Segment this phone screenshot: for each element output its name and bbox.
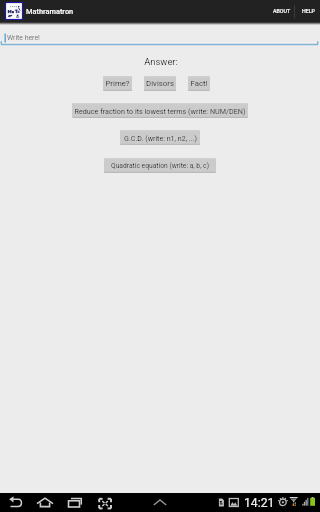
staticText: Mathramatron [26, 7, 74, 16]
button[interactable]: HELP [297, 3, 319, 19]
button[interactable]: Write here! [0, 30, 320, 46]
staticText: Write here! [7, 34, 40, 42]
staticText: Prime? [105, 79, 130, 88]
button[interactable]: ABOUT [268, 3, 296, 19]
button[interactable]: Divisors [144, 76, 176, 91]
button[interactable]: Reduce fraction to its lowest terms (wri… [72, 103, 248, 118]
button[interactable]: Fact! [188, 76, 210, 91]
button[interactable]: Back [6, 495, 26, 511]
button[interactable]: App icon [5, 2, 23, 20]
button[interactable]: Quadratic equation (write: a, b, c) [104, 158, 216, 173]
staticText: Fact! [190, 79, 208, 88]
staticText: Divisors [146, 79, 174, 88]
staticText: Quadratic equation (write: a, b, c) [111, 162, 209, 170]
button[interactable]: Recent apps [66, 495, 84, 511]
staticText: 14:21 [244, 496, 275, 510]
staticText: Answer: [1, 56, 320, 67]
staticText: HELP [302, 8, 315, 14]
staticText: Reduce fraction to its lowest terms (wri… [74, 107, 246, 115]
button[interactable]: Screenshot [98, 495, 114, 511]
staticText: G.C.D. (write: n1, n2, ...) [124, 134, 197, 142]
button[interactable]: Show notifications [152, 496, 168, 508]
button[interactable]: Prime? [103, 76, 132, 91]
staticText: ABOUT [273, 8, 291, 14]
button[interactable]: G.C.D. (write: n1, n2, ...) [120, 130, 200, 145]
button[interactable]: Home [36, 495, 55, 511]
